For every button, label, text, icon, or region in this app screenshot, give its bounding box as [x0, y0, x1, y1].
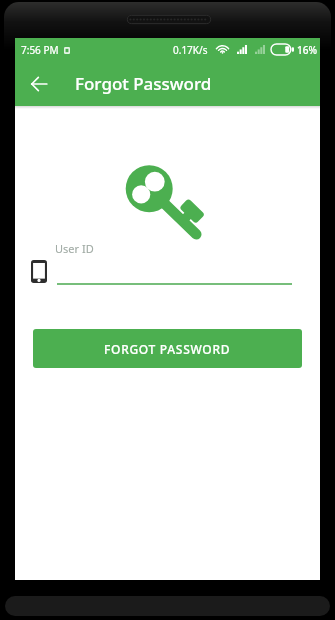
staticText: 0.17K/s [173, 43, 208, 57]
staticText: 7:56 PM [21, 43, 59, 57]
button[interactable]: Back [15, 61, 63, 106]
staticText: FORGOT PASSWORD [104, 341, 231, 357]
staticText: 16% [297, 43, 317, 57]
staticText: User ID [55, 241, 94, 256]
staticText: Forgot Password [75, 72, 212, 95]
button[interactable]: FORGOT PASSWORD [33, 329, 302, 368]
